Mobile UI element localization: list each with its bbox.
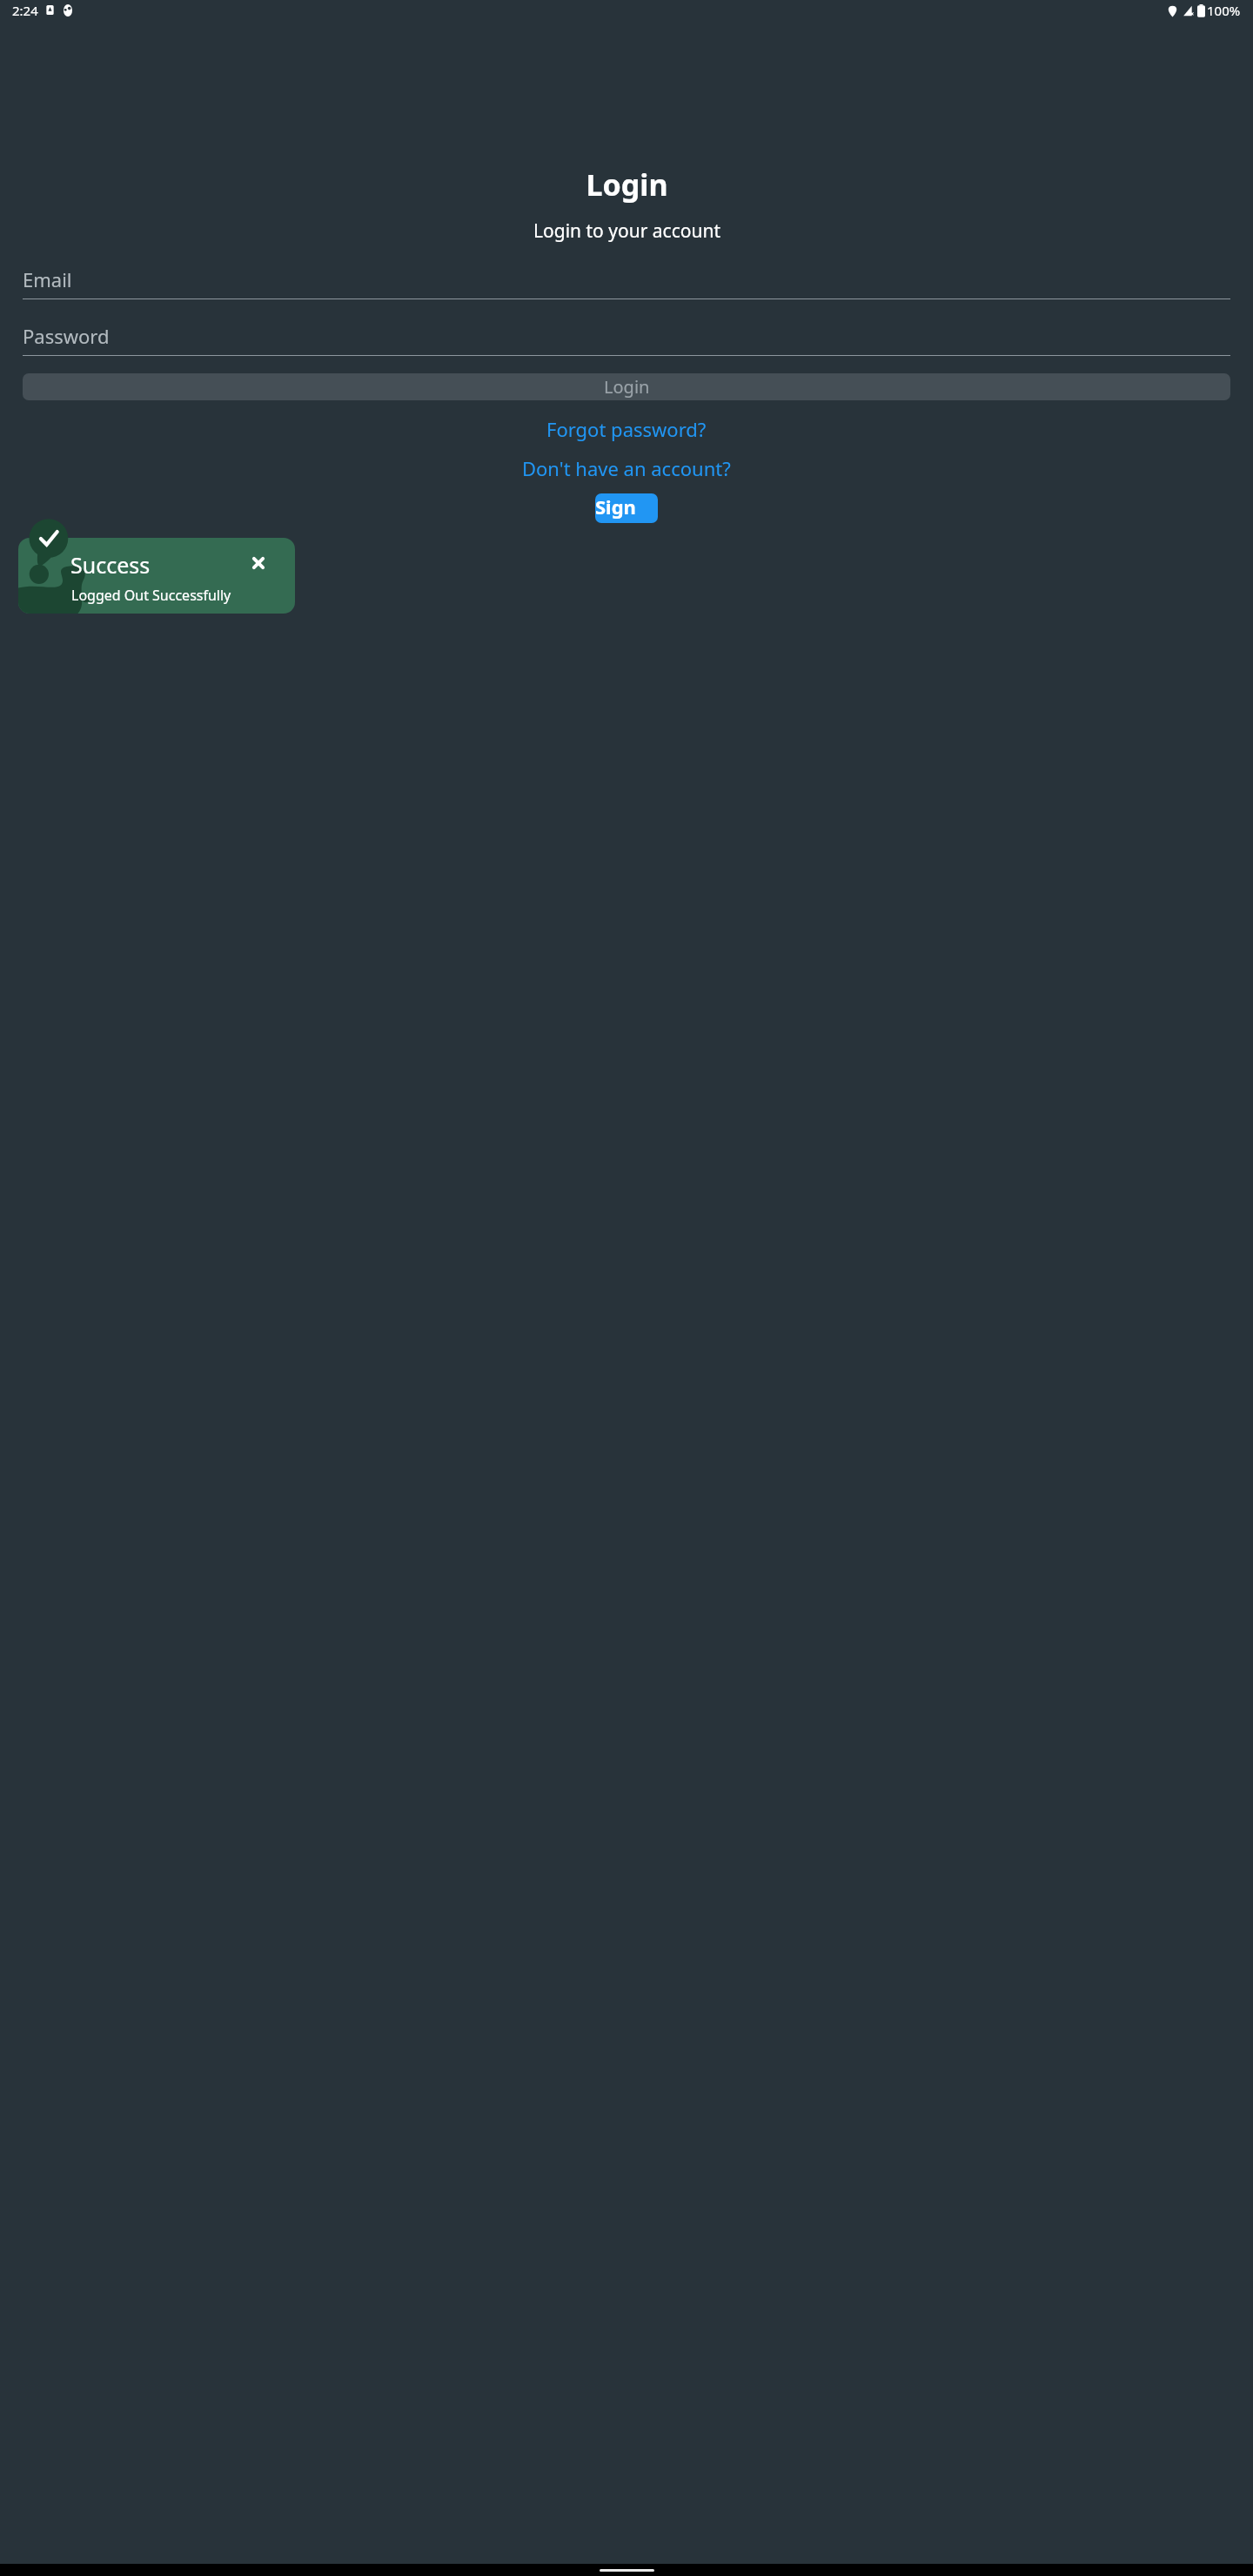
staticText: Login to your account xyxy=(533,218,720,244)
staticText: Logged Out Successfully xyxy=(71,586,231,605)
staticText: 100% xyxy=(1207,2,1241,19)
staticText: Login xyxy=(604,375,650,399)
staticText: Don't have an account? xyxy=(522,455,731,481)
staticText: Login xyxy=(586,164,668,205)
staticText: Success xyxy=(70,550,151,580)
button[interactable]: Login xyxy=(23,373,1230,400)
staticText: Forgot password? xyxy=(546,416,707,442)
button[interactable]: Success xyxy=(18,538,295,614)
button[interactable]: Forgot password? xyxy=(536,412,717,446)
staticText: Email xyxy=(23,266,72,292)
button[interactable]: Sign up xyxy=(595,493,658,523)
staticText: 2:24 xyxy=(12,2,38,19)
button[interactable]: Dismiss xyxy=(248,553,269,574)
staticText: Sign up xyxy=(595,493,658,523)
staticText: Password xyxy=(23,323,110,349)
button[interactable]: Don't have an account? xyxy=(512,451,741,486)
